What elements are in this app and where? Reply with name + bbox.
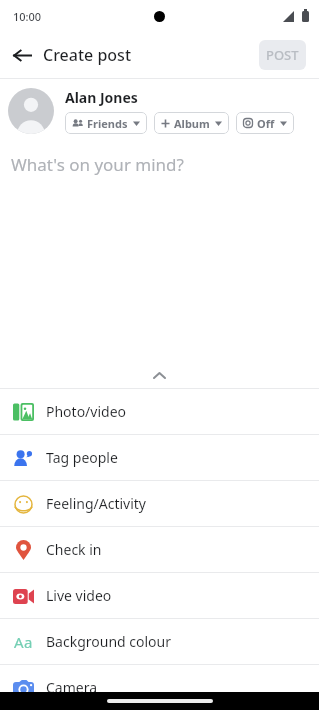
staticText: Background colour (46, 632, 171, 651)
staticText: Album (174, 116, 210, 131)
button[interactable]: Live video (0, 573, 319, 618)
staticText: What's on your mind? (11, 153, 184, 176)
staticText: Friends (87, 116, 128, 131)
staticText: Check in (46, 540, 102, 559)
staticText: A (14, 632, 24, 652)
button[interactable]: Feeling/Activity (0, 481, 319, 526)
button[interactable]: Check in (0, 527, 319, 572)
button[interactable]: POST (259, 40, 306, 70)
staticText: Feeling/Activity (46, 494, 147, 513)
button[interactable]: Photo/video (0, 389, 319, 434)
button[interactable]: Album (154, 112, 229, 134)
staticText: Create post (43, 44, 132, 66)
staticText: Photo/video (46, 402, 127, 421)
button[interactable]: Friends (65, 112, 147, 134)
staticText: a (24, 632, 33, 652)
staticText: Live video (46, 586, 112, 605)
staticText: POST (266, 46, 299, 64)
button[interactable]: Tag people (0, 435, 319, 480)
button[interactable]: Collapse (0, 362, 319, 388)
staticText: Camera (46, 678, 98, 697)
button[interactable]: Back (6, 39, 38, 71)
staticText: Tag people (46, 448, 118, 467)
staticText: Off (257, 116, 275, 131)
staticText: Alan Jones (65, 88, 138, 107)
button[interactable]: Off (236, 112, 294, 134)
button[interactable]: A (0, 619, 319, 664)
button[interactable]: Camera (0, 665, 319, 710)
staticText: 10:00 (13, 9, 42, 24)
